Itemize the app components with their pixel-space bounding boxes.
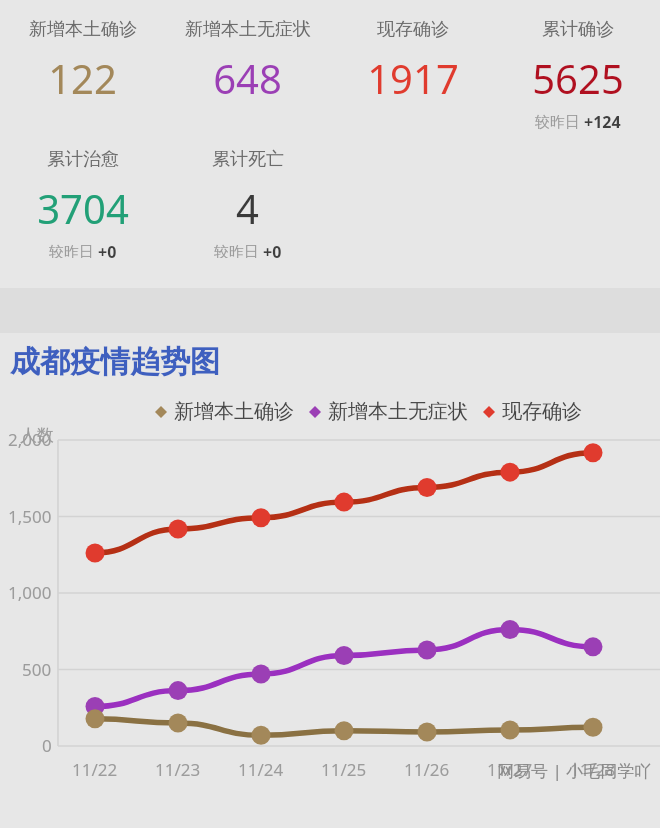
button[interactable]: 累计确诊: [495, 0, 660, 130]
staticText: 11/28: [570, 758, 616, 781]
staticText: 累计死亡: [212, 148, 284, 171]
staticText: 累计治愈: [47, 148, 119, 171]
staticText: 648: [213, 51, 282, 105]
staticText: 1917: [367, 51, 459, 105]
button[interactable]: 新增本土确诊: [0, 0, 165, 130]
staticText: 人数: [20, 425, 54, 446]
staticText: 0: [42, 734, 52, 757]
staticText: +0: [263, 241, 282, 258]
staticText: 500: [22, 658, 52, 681]
staticText: 11/23: [155, 758, 201, 781]
staticText: 现存确诊: [377, 18, 449, 41]
button[interactable]: 新增本土无症状: [309, 399, 468, 424]
staticText: 现存确诊: [502, 399, 582, 424]
button[interactable]: 现存确诊: [483, 399, 582, 424]
button[interactable]: 累计治愈: [0, 130, 165, 258]
staticText: 122: [48, 51, 117, 105]
staticText: 成都疫情趋势图: [10, 343, 220, 381]
staticText: +0: [98, 241, 117, 258]
staticText: 11/24: [238, 758, 284, 781]
button[interactable]: 新增本土确诊: [155, 399, 294, 424]
staticText: 2,000: [8, 428, 52, 451]
staticText: 新增本土无症状: [185, 18, 311, 41]
staticText: 新增本土确诊: [29, 18, 137, 41]
staticText: 11/25: [321, 758, 367, 781]
staticText: 网易号 | 小毛同学吖: [497, 759, 652, 782]
staticText: 11/22: [72, 758, 118, 781]
staticText: 1,000: [8, 581, 52, 604]
staticText: 新增本土确诊: [174, 399, 294, 424]
staticText: +124: [584, 111, 621, 130]
staticText: 5625: [532, 51, 624, 105]
staticText: 较昨日: [49, 241, 98, 258]
button[interactable]: 累计死亡: [165, 130, 330, 258]
staticText: 累计确诊: [542, 18, 614, 41]
staticText: 新增本土无症状: [328, 399, 468, 424]
staticText: 3704: [37, 181, 129, 235]
button[interactable]: 现存确诊: [330, 0, 495, 130]
staticText: 较昨日: [214, 241, 263, 258]
staticText: 1,500: [8, 505, 52, 528]
staticText: 4: [236, 181, 259, 235]
button[interactable]: 新增本土无症状: [165, 0, 330, 130]
button[interactable]: 成都疫情趋势图: [0, 333, 660, 391]
staticText: 较昨日: [535, 111, 584, 130]
staticText: 11/27: [487, 758, 533, 781]
staticText: 11/26: [404, 758, 450, 781]
